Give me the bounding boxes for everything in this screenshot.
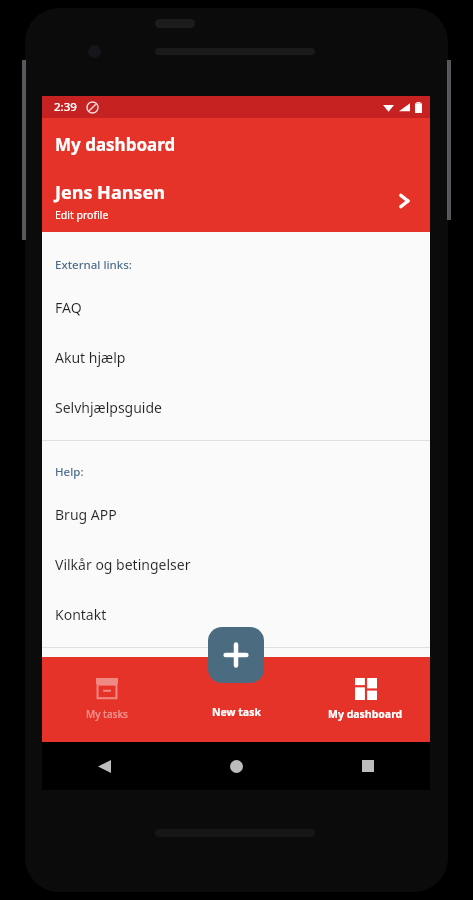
staticText: Kontakt (55, 605, 107, 624)
button[interactable]: Back (94, 756, 114, 776)
button[interactable]: Home (226, 756, 246, 776)
staticText: Help: (55, 464, 84, 480)
staticText: Brug APP (55, 505, 117, 524)
other: Edit profile (394, 191, 414, 211)
button[interactable]: Akut hjælp (42, 332, 430, 382)
staticText: My dashboard (328, 707, 403, 721)
staticText: Edit profile (55, 208, 109, 222)
staticText: Jens Hansen (55, 180, 165, 205)
button[interactable]: My tasks (42, 657, 172, 742)
button[interactable]: Vilkår og betingelser (42, 539, 430, 589)
staticText: External links: (55, 257, 132, 273)
button[interactable]: Kontakt (42, 589, 430, 639)
staticText: Akut hjælp (55, 348, 126, 367)
staticText: FAQ (55, 298, 82, 317)
staticText: 2:39 (54, 99, 77, 115)
staticText: My tasks (86, 707, 128, 721)
button[interactable]: Recents (358, 756, 378, 776)
staticText: My dashboard (55, 133, 176, 156)
button[interactable]: New task (172, 657, 301, 742)
button[interactable]: New task (208, 627, 264, 683)
button[interactable]: My dashboard (301, 657, 430, 742)
staticText: Vilkår og betingelser (55, 555, 191, 574)
button[interactable]: Brug APP (42, 489, 430, 539)
staticText: New task (212, 705, 261, 719)
button[interactable]: Selvhjælpsguide (42, 382, 430, 432)
staticText: Selvhjælpsguide (55, 398, 162, 417)
button[interactable]: Jens Hansen (42, 170, 430, 232)
button[interactable]: FAQ (42, 282, 430, 332)
